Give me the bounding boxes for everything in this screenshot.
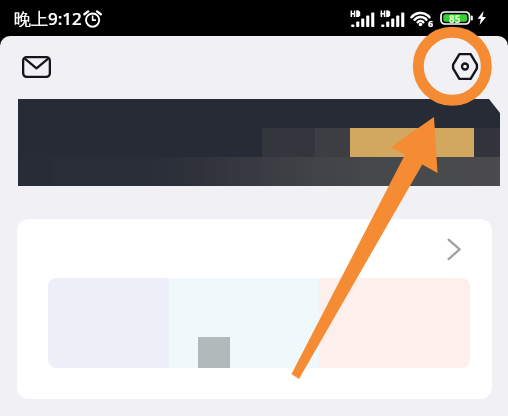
staticText: 6 — [428, 17, 434, 29]
button[interactable]: Banner — [18, 99, 500, 186]
button[interactable]: Open — [17, 219, 492, 399]
staticText: 晚上9:12 — [14, 7, 82, 30]
staticText: 85 — [449, 12, 461, 24]
button[interactable]: Settings — [443, 44, 487, 88]
button[interactable]: Open — [430, 223, 478, 271]
button[interactable]: Messages — [14, 45, 58, 89]
